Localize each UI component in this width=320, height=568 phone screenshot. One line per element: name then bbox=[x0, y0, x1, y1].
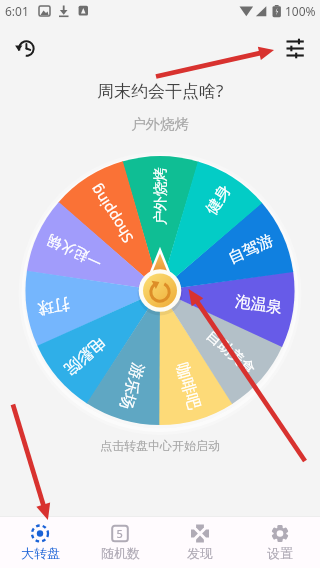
staticText: 6:01 bbox=[5, 3, 29, 19]
staticText: 100% bbox=[285, 3, 316, 19]
staticText: 随机数 bbox=[101, 545, 140, 561]
staticText: 设置 bbox=[267, 545, 293, 561]
button[interactable]: 发现 bbox=[160, 517, 240, 568]
staticText: 周末约会干点啥? bbox=[97, 79, 224, 102]
button[interactable]: Settings bbox=[275, 27, 315, 67]
staticText: 户外烧烤 bbox=[131, 115, 189, 133]
button[interactable]: 设置 bbox=[240, 517, 320, 568]
staticText: 大转盘 bbox=[21, 545, 60, 561]
button[interactable]: 大转盘 bbox=[0, 517, 80, 568]
button[interactable]: History bbox=[6, 27, 46, 67]
staticText: 点击转盘中心开始启动 bbox=[100, 438, 220, 453]
staticText: 发现 bbox=[187, 545, 213, 561]
button[interactable]: 随机数 bbox=[80, 517, 160, 568]
